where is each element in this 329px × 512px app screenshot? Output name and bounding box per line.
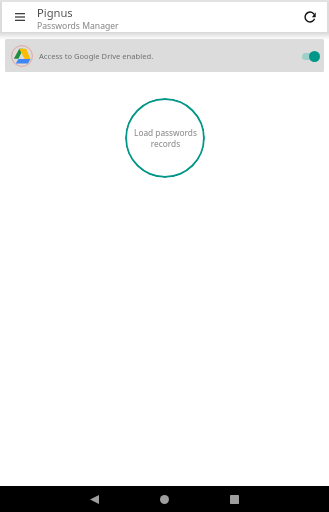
button[interactable]: Back xyxy=(59,486,129,512)
button[interactable]: Recent apps xyxy=(199,486,269,512)
button[interactable]: Menu xyxy=(2,3,37,31)
staticText: Load passwords records xyxy=(134,127,197,149)
button[interactable]: Refresh xyxy=(292,3,327,31)
button[interactable]: Home xyxy=(129,486,199,512)
staticText: Passwords Manager xyxy=(37,20,119,32)
staticText: Pignus xyxy=(37,5,73,20)
button[interactable]: Load passwords records xyxy=(125,98,205,178)
button[interactable]: Access to Google Drive enabled. xyxy=(5,39,324,72)
staticText: Access to Google Drive enabled. xyxy=(39,51,154,61)
button[interactable]: Toggle Google Drive access xyxy=(302,49,320,63)
